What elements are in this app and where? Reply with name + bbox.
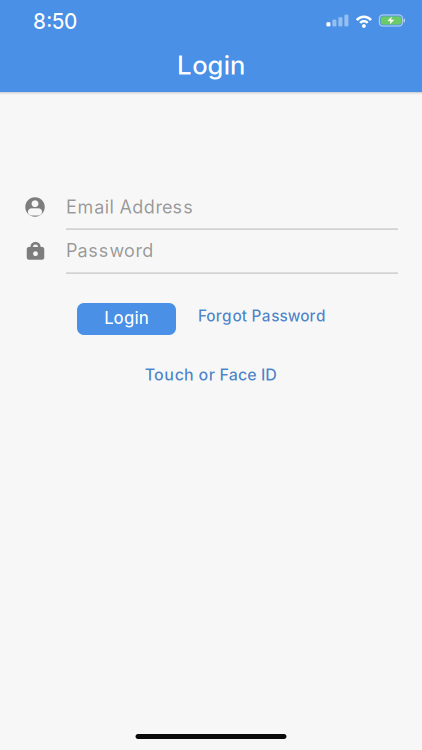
staticText: Touch or Face ID	[145, 365, 277, 384]
button[interactable]: Password	[0, 239, 422, 274]
staticText: Login	[104, 308, 149, 328]
button[interactable]: Email Address	[0, 196, 422, 230]
staticText: Login	[177, 49, 245, 81]
staticText: Forgot Password	[198, 307, 325, 325]
staticText: Email Address	[66, 196, 193, 218]
button[interactable]: Login	[77, 303, 176, 335]
button[interactable]: Touch or Face ID	[145, 366, 277, 385]
button[interactable]: Forgot Password	[198, 310, 325, 328]
staticText: 8:50	[33, 9, 77, 34]
staticText: Password	[66, 240, 153, 261]
